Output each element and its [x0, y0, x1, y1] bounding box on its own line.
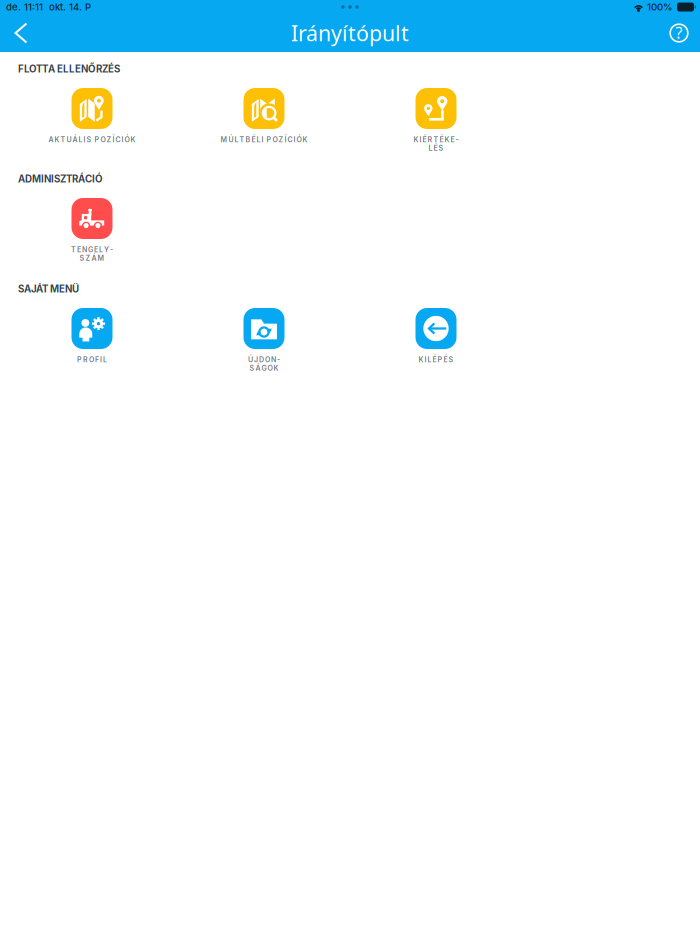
staticText: A K T U Á L I S P O Z Í C I Ó K: [48, 135, 135, 144]
staticText: M Ú L T B É L I P O Z Í C I Ó K: [220, 135, 307, 144]
staticText: Irányítópult: [291, 19, 409, 47]
staticText: K I L É P É S: [418, 355, 453, 364]
staticText: SAJÁT MENÜ: [18, 283, 79, 295]
button[interactable]: Back: [4, 14, 38, 52]
button[interactable]: M Ú L T B É L I P O Z Í C I Ó K: [189, 88, 339, 174]
staticText: K I É R T É K E -: [413, 135, 458, 144]
staticText: de. 11:11: [6, 1, 43, 13]
staticText: FLOTTA ELLENŐRZÉS: [18, 63, 120, 75]
button[interactable]: P R O F I L: [17, 308, 167, 394]
staticText: ADMINISZTRÁCIÓ: [18, 173, 103, 185]
staticText: Ú J D O N -: [248, 355, 280, 364]
staticText: S Z Á M: [79, 254, 104, 262]
staticText: L É S: [428, 144, 443, 152]
button[interactable]: K I L É P É S: [361, 308, 511, 394]
staticText: T E N G E L Y -: [71, 245, 113, 254]
staticText: 100%: [647, 1, 673, 13]
button[interactable]: T E N G E L Y -: [17, 198, 167, 284]
staticText: S Á G O K: [249, 364, 278, 372]
staticText: okt. 14. P: [49, 1, 91, 13]
button[interactable]: Help: [662, 14, 696, 52]
button[interactable]: K I É R T É K E -: [361, 88, 511, 174]
button[interactable]: A K T U Á L I S P O Z Í C I Ó K: [17, 88, 167, 174]
staticText: ?: [675, 22, 682, 43]
staticText: P R O F I L: [77, 355, 107, 364]
button[interactable]: Ú J D O N -: [189, 308, 339, 394]
